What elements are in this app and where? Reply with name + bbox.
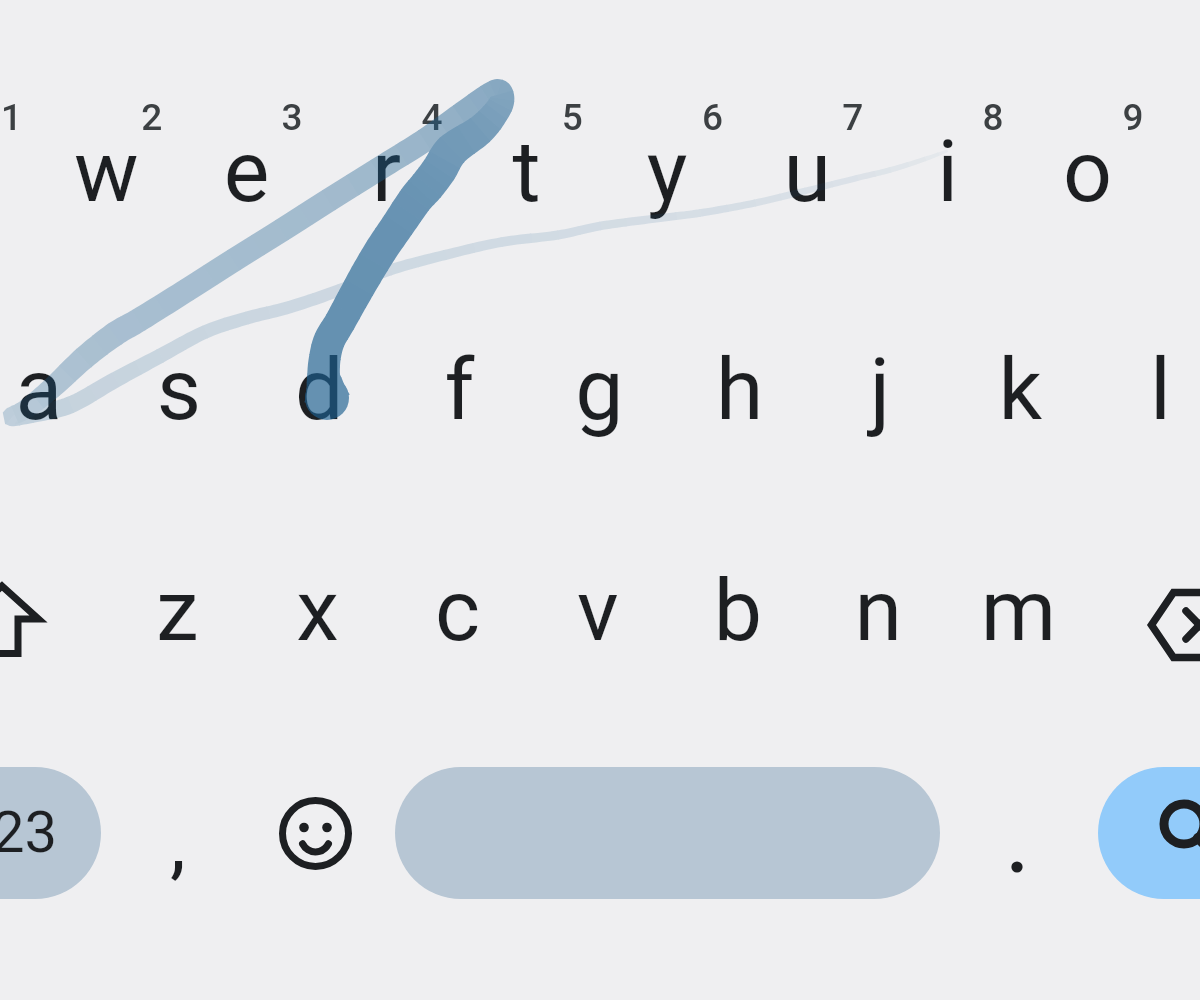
button[interactable]: s xyxy=(109,270,249,490)
button[interactable]: w xyxy=(36,50,176,270)
button[interactable]: c xyxy=(387,490,527,710)
button[interactable]: j xyxy=(810,270,950,490)
button[interactable]: x xyxy=(247,490,387,710)
button[interactable]: Search xyxy=(1090,733,1200,933)
button[interactable]: Space xyxy=(392,733,942,933)
button[interactable]: h xyxy=(669,270,809,490)
button[interactable]: . xyxy=(947,733,1087,933)
button[interactable]: u xyxy=(737,50,877,270)
button[interactable]: a xyxy=(0,270,109,490)
button[interactable]: , xyxy=(107,733,247,933)
button[interactable]: Symbols xyxy=(0,733,105,933)
button[interactable]: Emoji xyxy=(245,733,385,933)
button[interactable]: o xyxy=(1017,50,1157,270)
button[interactable]: y xyxy=(597,50,737,270)
button[interactable]: d xyxy=(249,270,389,490)
button[interactable]: v xyxy=(528,490,668,710)
button[interactable]: Shift xyxy=(0,490,120,710)
button[interactable]: e xyxy=(176,50,316,270)
button[interactable]: b xyxy=(668,490,808,710)
button[interactable]: r xyxy=(316,50,456,270)
button[interactable]: l xyxy=(1090,270,1200,490)
button[interactable]: n xyxy=(808,490,948,710)
button[interactable]: t xyxy=(456,50,596,270)
button[interactable]: g xyxy=(529,270,669,490)
button[interactable]: f xyxy=(389,270,529,490)
button[interactable]: z xyxy=(107,490,247,710)
button[interactable]: m xyxy=(948,490,1088,710)
button[interactable]: i xyxy=(877,50,1017,270)
button[interactable]: k xyxy=(950,270,1090,490)
button[interactable]: Backspace xyxy=(1090,490,1200,710)
